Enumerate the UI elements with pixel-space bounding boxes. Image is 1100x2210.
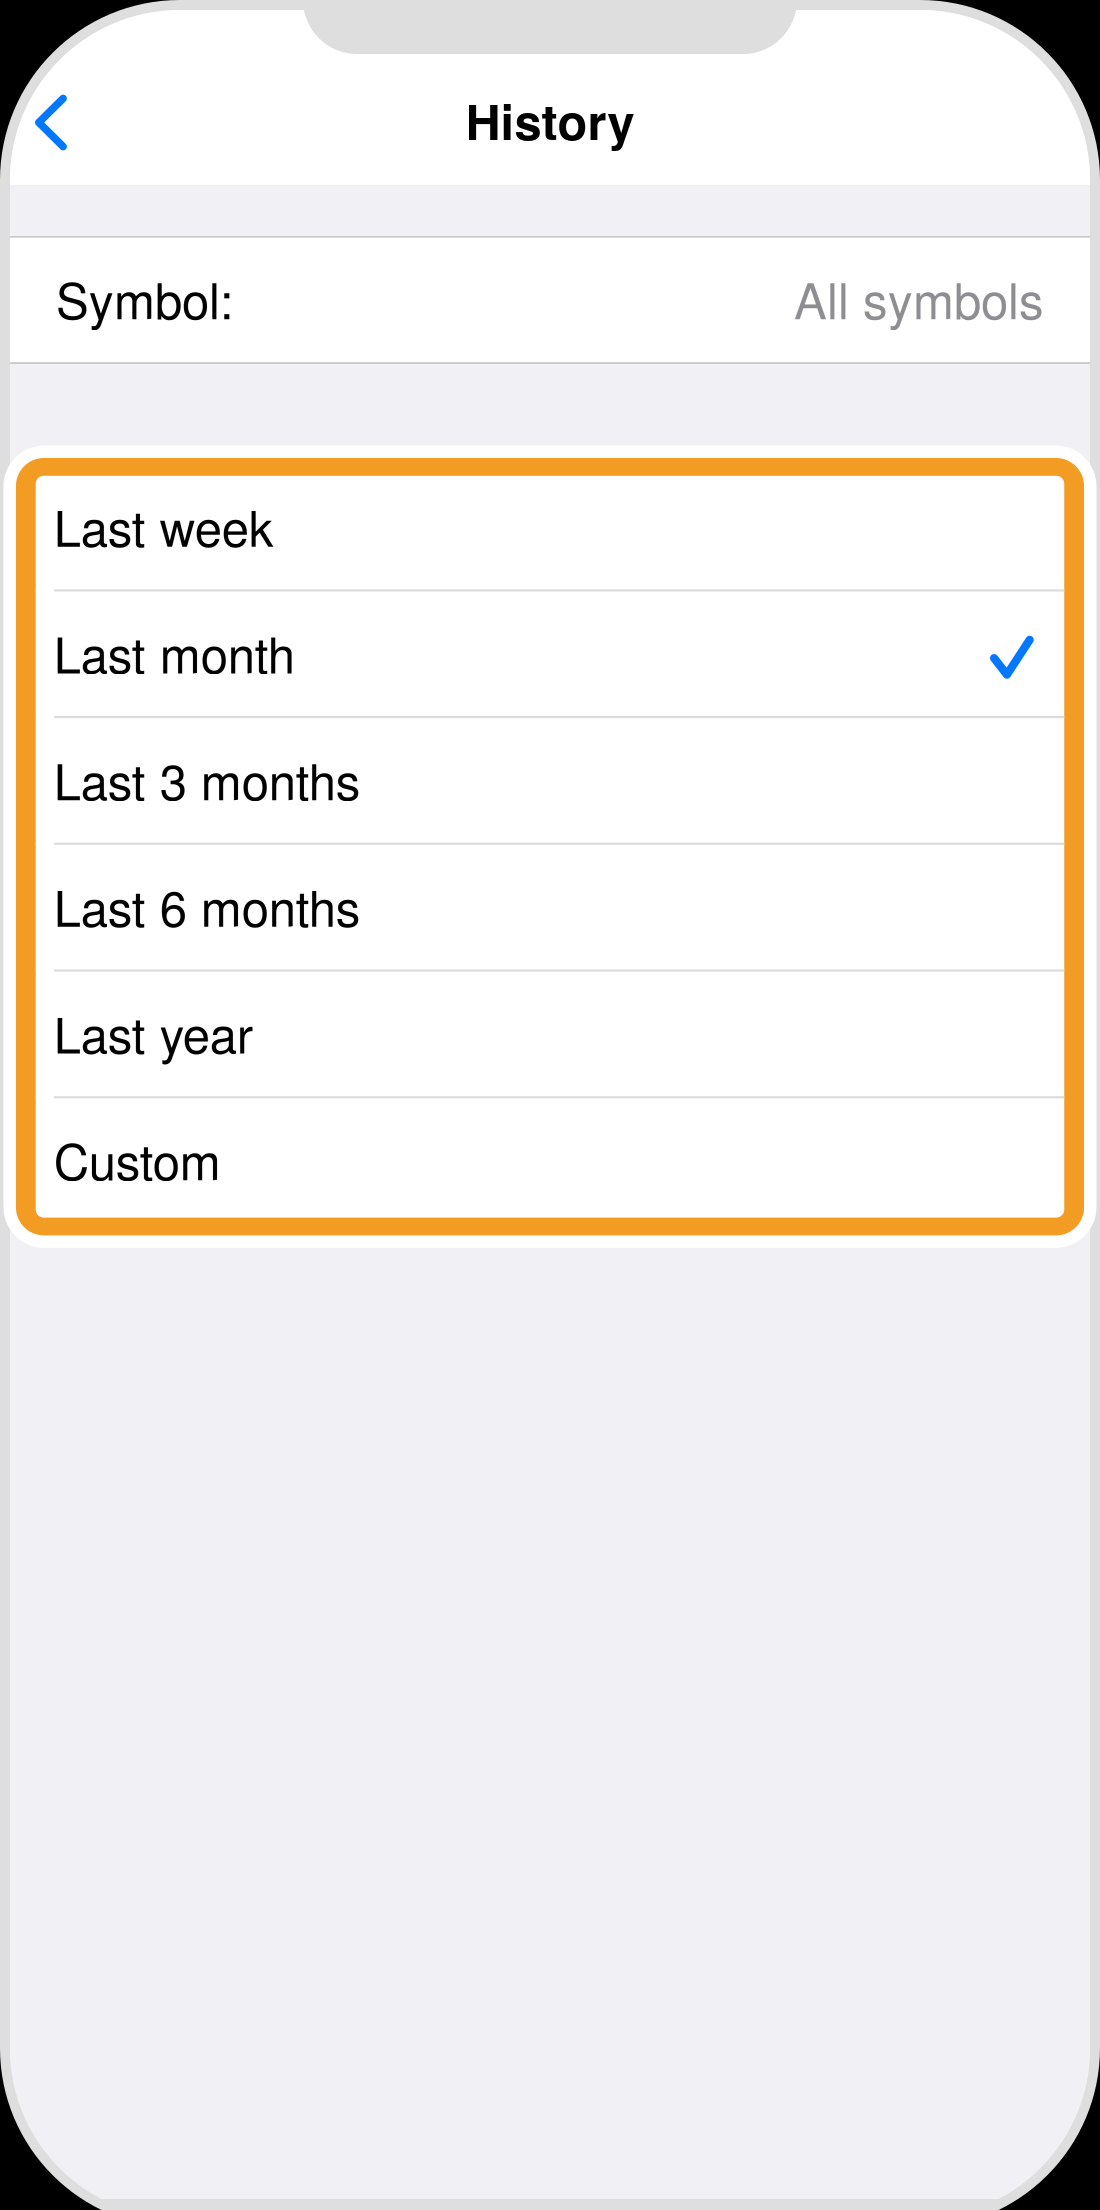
staticText: Symbol: xyxy=(56,263,234,333)
staticText: Last 6 months xyxy=(54,870,361,941)
button[interactable]: Last week xyxy=(36,465,1064,591)
staticText: Last 3 months xyxy=(54,744,361,814)
staticText: Last week xyxy=(54,490,274,561)
button[interactable]: Last 6 months xyxy=(36,845,1064,972)
button[interactable]: Last 3 months xyxy=(36,718,1064,845)
button[interactable]: Last year xyxy=(36,972,1064,1098)
staticText: Custom xyxy=(54,1124,221,1194)
staticText: All symbols xyxy=(794,263,1044,333)
button[interactable]: Last month xyxy=(36,591,1064,718)
button[interactable]: Custom xyxy=(36,1098,1064,1225)
staticText: Last month xyxy=(54,617,295,687)
staticText: History xyxy=(465,85,634,155)
button[interactable]: Symbol: xyxy=(10,238,1090,362)
button[interactable]: Back xyxy=(10,71,101,174)
staticText: Last year xyxy=(54,997,253,1067)
